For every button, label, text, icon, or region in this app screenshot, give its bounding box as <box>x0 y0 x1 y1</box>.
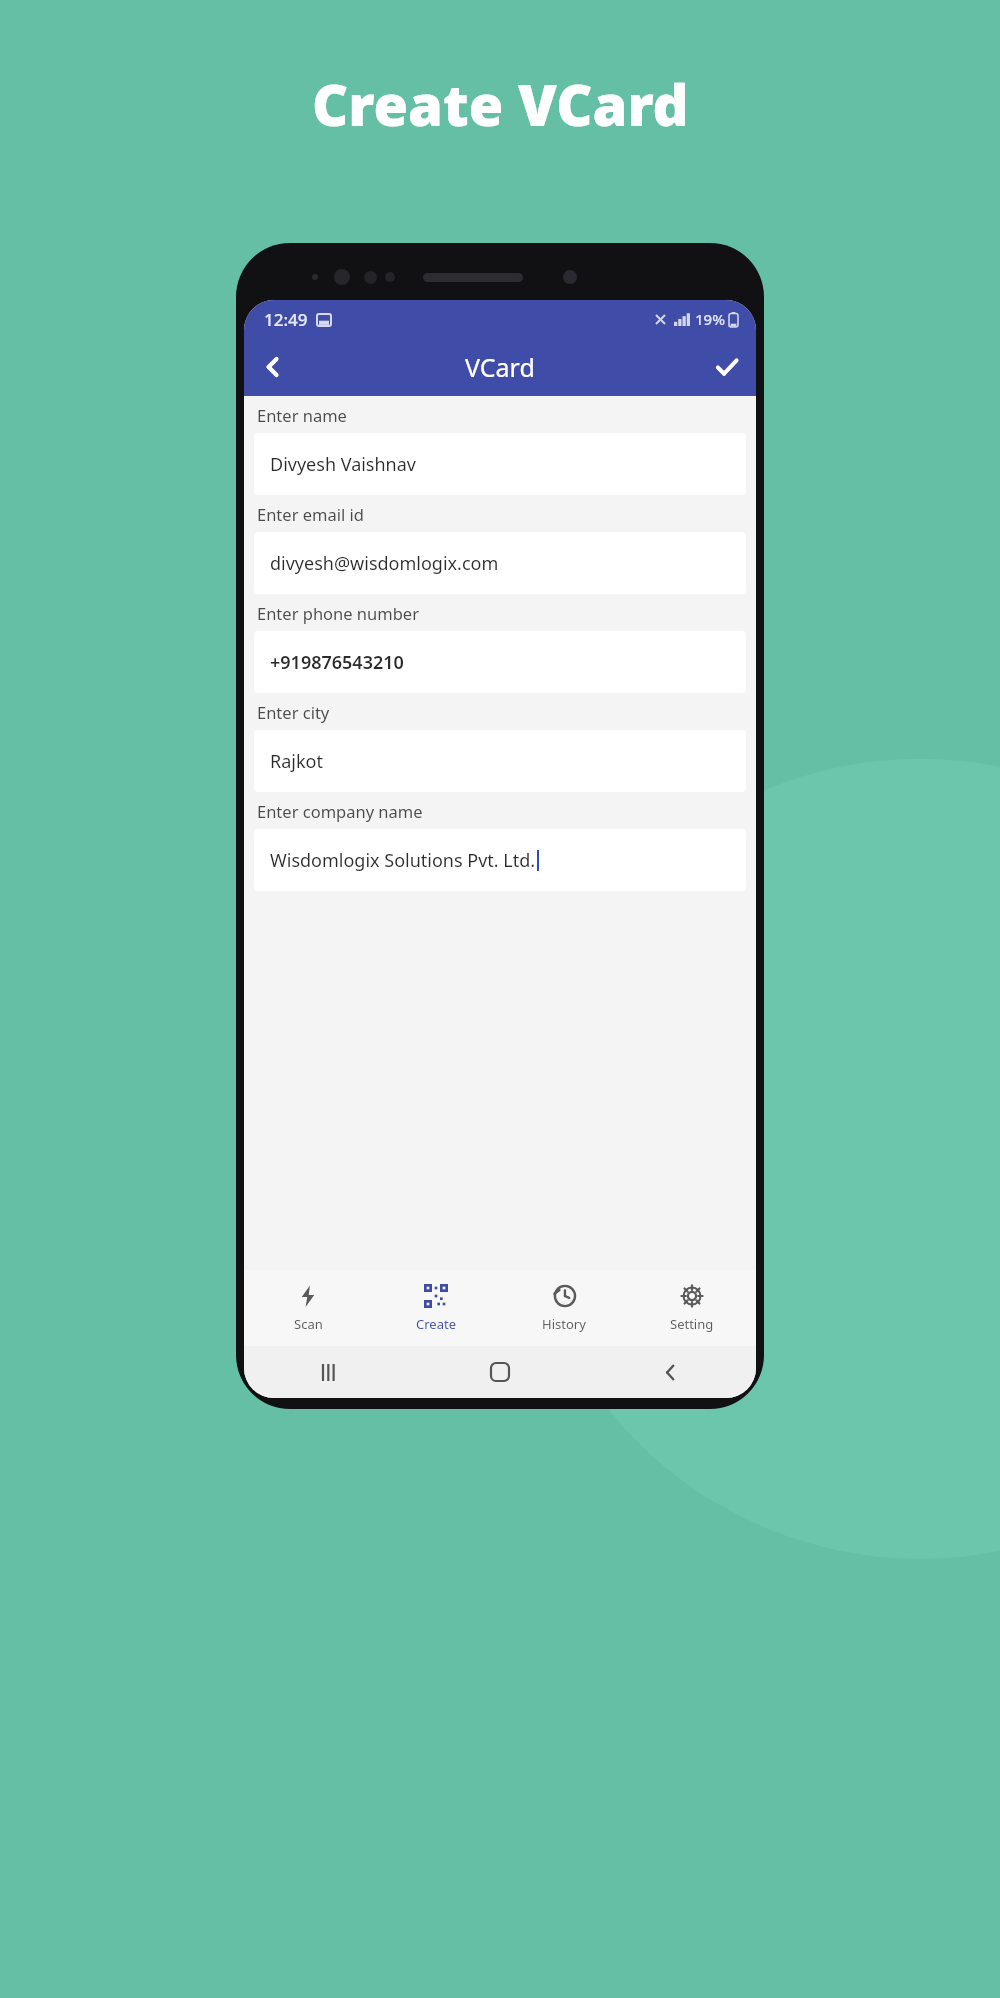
staticText: Scan <box>294 1315 323 1333</box>
staticText: Enter email id <box>257 503 364 525</box>
button[interactable]: Create <box>372 1270 500 1346</box>
button[interactable]: Home <box>414 1346 585 1398</box>
staticText: Divyesh Vaishnav <box>270 452 416 477</box>
staticText: Enter phone number <box>257 602 419 624</box>
staticText: 19% <box>695 309 725 329</box>
staticText: Enter name <box>257 404 347 426</box>
staticText: 12:49 <box>264 308 308 331</box>
button[interactable]: Back <box>585 1346 756 1398</box>
button[interactable]: divyesh@wisdomlogix.com <box>254 532 746 594</box>
staticText: Enter city <box>257 701 330 723</box>
button[interactable]: Scan <box>244 1270 372 1346</box>
staticText: VCard <box>465 350 535 384</box>
staticText: History <box>542 1315 586 1333</box>
button[interactable]: History <box>500 1270 628 1346</box>
staticText: Create VCard <box>312 66 689 142</box>
button[interactable]: Recents <box>244 1346 414 1398</box>
staticText: Setting <box>670 1315 714 1333</box>
button[interactable]: Setting <box>628 1270 756 1346</box>
button[interactable]: Divyesh Vaishnav <box>254 433 746 495</box>
staticText: Enter company name <box>257 800 423 822</box>
staticText: Wisdomlogix Solutions Pvt. Ltd. <box>270 848 536 873</box>
button[interactable]: Wisdomlogix Solutions Pvt. Ltd. <box>254 829 746 891</box>
staticText: Create <box>416 1315 456 1333</box>
button[interactable]: Rajkot <box>254 730 746 792</box>
staticText: divyesh@wisdomlogix.com <box>270 551 499 576</box>
staticText: Rajkot <box>270 749 323 774</box>
button[interactable]: +919876543210 <box>254 631 746 693</box>
staticText: +919876543210 <box>270 650 404 675</box>
button[interactable]: Save <box>698 338 756 396</box>
button[interactable]: Back <box>244 338 302 396</box>
